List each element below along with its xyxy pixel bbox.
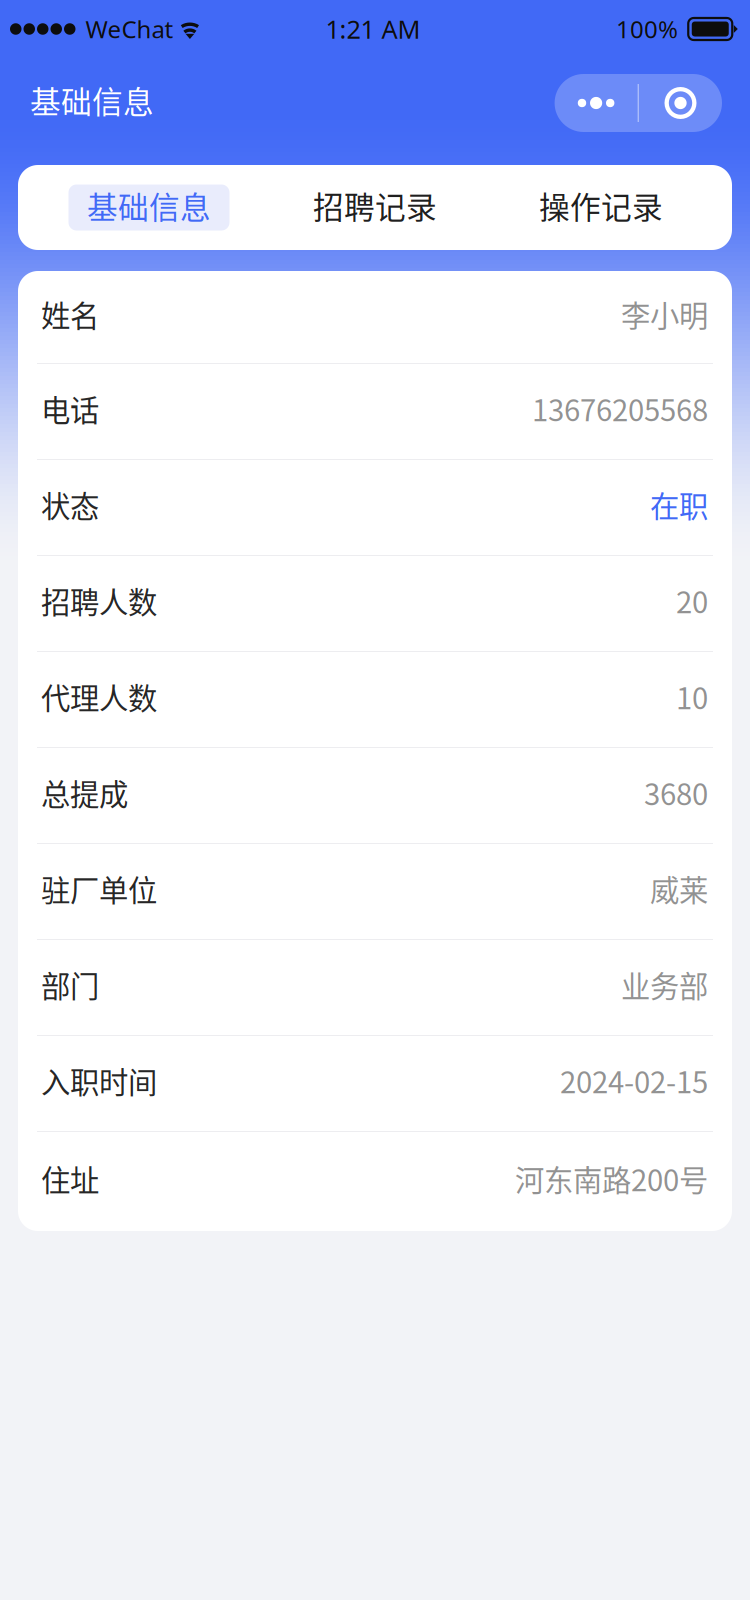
staticText: 入职时间 [41, 1059, 157, 1102]
staticText: 1:21 AM [325, 12, 420, 46]
button[interactable]: 驻厂单位 [18, 844, 732, 939]
staticText: 代理人数 [41, 675, 157, 718]
button[interactable]: 招聘记录 [262, 165, 488, 250]
staticText: 操作记录 [539, 183, 663, 228]
staticText: 电话 [41, 387, 99, 430]
staticText: 姓名 [41, 293, 99, 335]
button[interactable]: 姓名 [18, 271, 732, 363]
staticText: 驻厂单位 [41, 867, 157, 910]
staticText: 20 [676, 579, 708, 622]
button[interactable]: 总提成 [18, 748, 732, 843]
button[interactable]: More [555, 74, 638, 132]
button[interactable]: 操作记录 [488, 165, 714, 250]
staticText: 威莱 [650, 867, 708, 910]
staticText: 招聘记录 [313, 183, 437, 228]
button[interactable]: 状态 [18, 460, 732, 555]
staticText: 住址 [41, 1157, 99, 1200]
staticText: 总提成 [41, 771, 128, 814]
button[interactable]: Close [639, 74, 722, 132]
button[interactable]: 代理人数 [18, 652, 732, 747]
staticText: 招聘人数 [41, 579, 157, 622]
staticText: 河东南路200号 [515, 1157, 708, 1200]
staticText: 业务部 [621, 963, 708, 1006]
staticText: 李小明 [621, 293, 708, 335]
staticText: 3680 [644, 771, 708, 814]
staticText: 状态 [41, 483, 99, 526]
button[interactable]: 招聘人数 [18, 556, 732, 651]
staticText: 13676205568 [532, 387, 708, 430]
button[interactable]: 入职时间 [18, 1036, 732, 1131]
button[interactable]: 部门 [18, 940, 732, 1035]
staticText: 基础信息 [30, 78, 154, 122]
staticText: WeChat [85, 13, 173, 45]
staticText: 10 [676, 675, 708, 718]
staticText: 部门 [41, 963, 99, 1006]
button[interactable]: 住址 [18, 1132, 732, 1231]
staticText: 100% [616, 13, 678, 45]
staticText: 在职 [650, 483, 708, 526]
button[interactable]: 基础信息 [36, 165, 262, 250]
staticText: 基础信息 [87, 183, 211, 228]
button[interactable]: 电话 [18, 364, 732, 459]
staticText: 2024-02-15 [560, 1059, 708, 1102]
